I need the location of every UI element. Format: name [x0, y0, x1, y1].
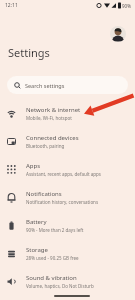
button[interactable]: Battery: [0, 211, 135, 239]
staticText: 90%: [122, 3, 131, 9]
staticText: Search settings: [25, 82, 65, 89]
staticText: Mobile, Wi-Fi, hotspot: [26, 115, 72, 121]
staticText: Network & internet: [26, 106, 81, 114]
button[interactable]: Sound & vibration: [0, 267, 135, 295]
staticText: 12:11: [5, 2, 18, 9]
staticText: Settings: [8, 45, 50, 60]
staticText: 28% used - 90.25 GB free: [26, 255, 79, 261]
staticText: Bluetooth, pairing: [26, 143, 65, 149]
button[interactable]: Storage: [0, 239, 135, 267]
button[interactable]: Network & internet: [0, 99, 135, 127]
staticText: Battery: [26, 218, 47, 226]
button[interactable]: Connected devices: [0, 127, 135, 155]
button[interactable]: Notifications: [0, 183, 135, 211]
staticText: Sound & vibration: [26, 274, 77, 282]
staticText: Assistant, recent apps, default apps: [26, 171, 101, 177]
staticText: Notification history, conversations: [26, 199, 99, 205]
button[interactable]: [110, 26, 126, 42]
button[interactable]: Apps: [0, 155, 135, 183]
staticText: Volume, haptics, Do Not Disturb: [26, 283, 94, 289]
staticText: Apps: [26, 162, 41, 170]
staticText: Connected devices: [26, 134, 79, 142]
staticText: Storage: [26, 246, 48, 254]
button[interactable]: Search settings: [7, 76, 128, 94]
staticText: 90% - More than 2 days left: [26, 227, 84, 233]
staticText: Notifications: [26, 190, 62, 198]
